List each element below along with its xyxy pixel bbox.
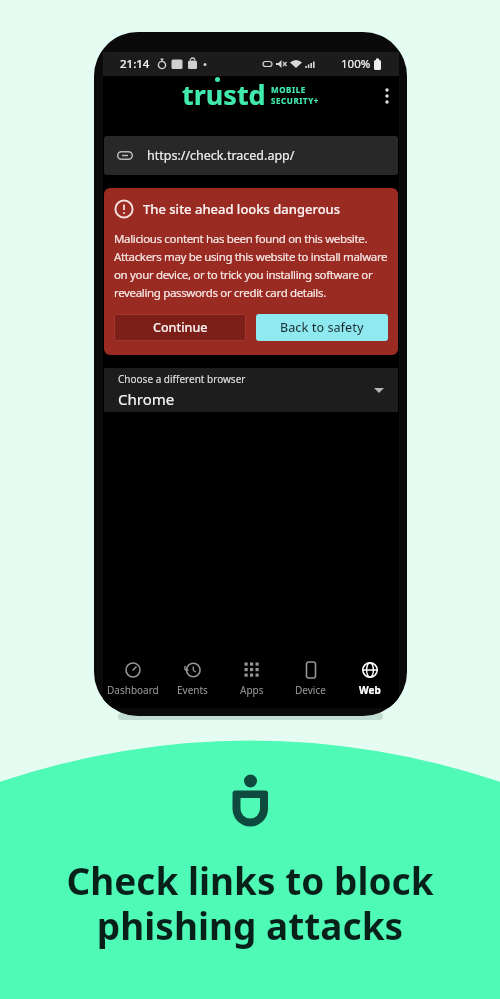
staticText: Device <box>295 683 326 697</box>
staticText: Malicious content has been found on this… <box>114 231 388 301</box>
staticText: Events <box>177 683 208 697</box>
staticText: MOBILE <box>271 84 306 95</box>
button[interactable] <box>384 87 390 105</box>
button[interactable]: Continue <box>114 314 246 341</box>
staticText: The site ahead looks dangerous <box>143 200 341 218</box>
staticText: trustd <box>182 76 266 113</box>
button[interactable]: Events <box>163 661 222 697</box>
button[interactable]: Web <box>340 661 399 697</box>
staticText: https://check.traced.app/ <box>147 147 295 164</box>
button[interactable]: Choose a different browser <box>104 368 398 412</box>
button[interactable]: Apps <box>222 661 281 697</box>
staticText: Web <box>359 683 381 697</box>
staticText: 21:14 <box>120 56 150 72</box>
button[interactable]: Device <box>281 661 340 697</box>
staticText: Dashboard <box>107 683 159 697</box>
staticText: Apps <box>240 683 264 697</box>
staticText: Continue <box>153 319 208 336</box>
button[interactable]: Dashboard <box>103 661 163 697</box>
button[interactable]: https://check.traced.app/ <box>104 136 398 175</box>
staticText: Check links to block phishing attacks <box>0 855 500 951</box>
staticText: SECURITY+ <box>271 95 320 106</box>
button[interactable]: Back to safety <box>256 314 388 341</box>
staticText: Chrome <box>118 389 175 409</box>
staticText: Choose a different browser <box>118 372 246 386</box>
staticText: 100% <box>341 56 371 72</box>
staticText: Back to safety <box>280 319 364 336</box>
